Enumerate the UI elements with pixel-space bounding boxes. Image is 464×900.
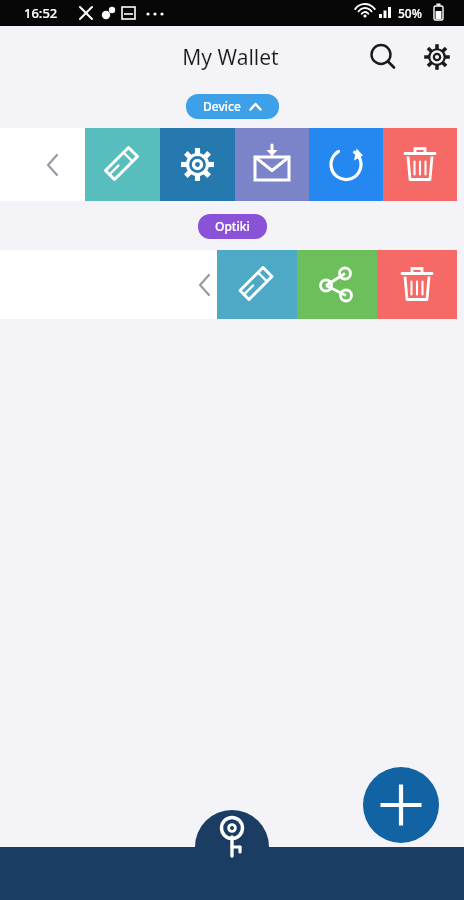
staticText: 16:52 (24, 4, 58, 22)
staticText: Device (203, 98, 241, 114)
staticText: My Wallet (182, 43, 279, 72)
button[interactable]: Device (186, 94, 279, 119)
button[interactable]: Delete (377, 250, 457, 319)
button[interactable]: Delete (383, 128, 457, 201)
button[interactable]: Collapse (183, 263, 227, 307)
staticText: 50% (398, 5, 422, 21)
button[interactable]: Share (297, 250, 377, 319)
button[interactable]: Add (363, 767, 439, 843)
button[interactable]: Export (235, 128, 309, 201)
button[interactable]: Passwords (195, 828, 269, 900)
button[interactable]: Edit (217, 250, 297, 319)
button[interactable]: Sync (309, 128, 383, 201)
staticText: Optiki (215, 218, 250, 234)
button[interactable]: Collapse (31, 143, 75, 187)
button[interactable]: Settings (415, 35, 459, 79)
button[interactable]: Optiki (198, 214, 267, 239)
button[interactable]: Search (361, 35, 405, 79)
button[interactable]: Settings (160, 128, 235, 201)
button[interactable]: Edit (85, 128, 160, 201)
